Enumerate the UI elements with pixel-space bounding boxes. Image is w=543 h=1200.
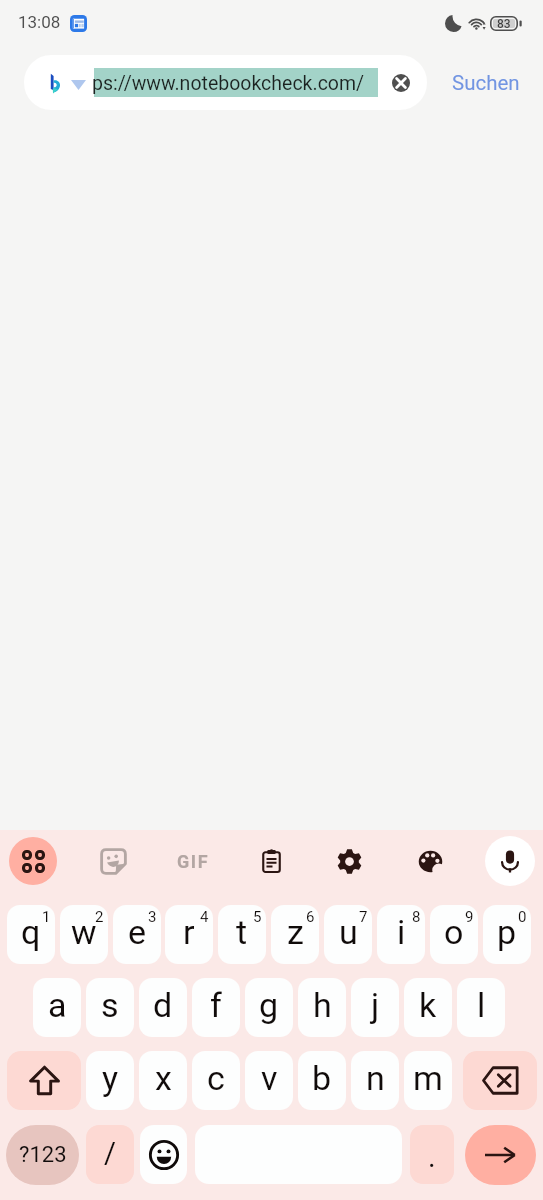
staticText: k xyxy=(419,985,437,1025)
staticText: a xyxy=(48,985,67,1025)
staticText: z xyxy=(287,912,304,952)
button[interactable]: d xyxy=(139,978,187,1037)
staticText: b xyxy=(312,1058,332,1098)
staticText: g xyxy=(259,985,279,1025)
staticText: 6 xyxy=(306,908,315,926)
button[interactable]: s xyxy=(86,978,134,1037)
staticText: ?123 xyxy=(19,1142,67,1168)
button[interactable]: k xyxy=(404,978,452,1037)
button[interactable]: r xyxy=(165,905,213,964)
staticText: / xyxy=(104,1136,116,1170)
staticText: 2 xyxy=(95,908,104,926)
button[interactable]: m xyxy=(404,1051,452,1110)
other: Choose search engine xyxy=(71,80,86,90)
button[interactable]: i xyxy=(377,905,425,964)
button[interactable]: g xyxy=(245,978,293,1037)
button[interactable]: Enter xyxy=(465,1125,536,1185)
staticText: n xyxy=(366,1058,385,1098)
button[interactable]: Settings xyxy=(325,837,373,885)
staticText: y xyxy=(102,1058,119,1098)
button[interactable]: Backspace xyxy=(463,1051,537,1110)
button[interactable]: Shift xyxy=(7,1051,81,1110)
staticText: 1 xyxy=(42,908,51,926)
button[interactable]: l xyxy=(457,978,505,1037)
button[interactable]: Choose search engine xyxy=(24,55,427,110)
button[interactable]: Clear text xyxy=(387,69,415,97)
staticText: t xyxy=(236,912,248,952)
button[interactable]: Emoji xyxy=(140,1125,187,1184)
staticText: m xyxy=(413,1058,443,1098)
staticText: 13:08 xyxy=(18,12,61,32)
button[interactable]: Voice input xyxy=(485,836,535,886)
button[interactable]: t xyxy=(218,905,266,964)
staticText: d xyxy=(153,985,173,1025)
button[interactable]: Suchen xyxy=(452,71,520,95)
staticText: i xyxy=(397,912,406,952)
staticText: 3 xyxy=(148,908,157,926)
staticText: 9 xyxy=(465,908,474,926)
button[interactable]: h xyxy=(298,978,346,1037)
button[interactable]: e xyxy=(113,905,161,964)
staticText: w xyxy=(71,912,97,952)
staticText: o xyxy=(444,912,464,952)
button[interactable]: Symbols xyxy=(6,1125,79,1185)
staticText: h xyxy=(313,985,332,1025)
staticText: l xyxy=(477,985,486,1025)
staticText: f xyxy=(210,985,222,1025)
staticText: 5 xyxy=(253,908,262,926)
button[interactable]: Keyboard modes xyxy=(9,837,57,885)
staticText: 83 xyxy=(497,17,511,31)
button[interactable]: x xyxy=(139,1051,187,1110)
button[interactable]: c xyxy=(192,1051,240,1110)
staticText: r xyxy=(183,912,195,952)
button[interactable]: Themes xyxy=(406,837,454,885)
button[interactable]: z xyxy=(271,905,319,964)
staticText: Suchen xyxy=(452,71,520,95)
staticText: ps://www.notebookcheck.com/ xyxy=(92,72,365,95)
staticText: j xyxy=(371,985,380,1025)
staticText: v xyxy=(261,1058,278,1098)
button[interactable]: f xyxy=(192,978,240,1037)
button[interactable]: w xyxy=(60,905,108,964)
staticText: GIF xyxy=(177,851,210,872)
staticText: q xyxy=(21,912,41,952)
button[interactable]: Clipboard xyxy=(247,837,295,885)
button[interactable]: o xyxy=(430,905,478,964)
button[interactable]: q xyxy=(7,905,55,964)
staticText: p xyxy=(497,912,517,952)
button[interactable]: a xyxy=(33,978,81,1037)
button[interactable]: GIF xyxy=(168,837,216,885)
button[interactable]: j xyxy=(351,978,399,1037)
button[interactable]: n xyxy=(351,1051,399,1110)
button[interactable]: . xyxy=(410,1125,454,1184)
button[interactable]: y xyxy=(86,1051,134,1110)
button[interactable]: / xyxy=(86,1125,134,1184)
staticText: s xyxy=(101,985,119,1025)
staticText: 7 xyxy=(359,908,368,926)
button[interactable]: u xyxy=(324,905,372,964)
button[interactable]: p xyxy=(483,905,531,964)
staticText: e xyxy=(128,912,147,952)
button[interactable]: v xyxy=(245,1051,293,1110)
staticText: 8 xyxy=(412,908,421,926)
staticText: 0 xyxy=(518,908,527,926)
button[interactable]: b xyxy=(298,1051,346,1110)
staticText: x xyxy=(155,1058,172,1098)
staticText: 4 xyxy=(200,908,209,926)
staticText: . xyxy=(428,1140,436,1174)
staticText: c xyxy=(207,1058,225,1098)
button[interactable]: Stickers xyxy=(89,837,137,885)
staticText: u xyxy=(339,912,358,952)
